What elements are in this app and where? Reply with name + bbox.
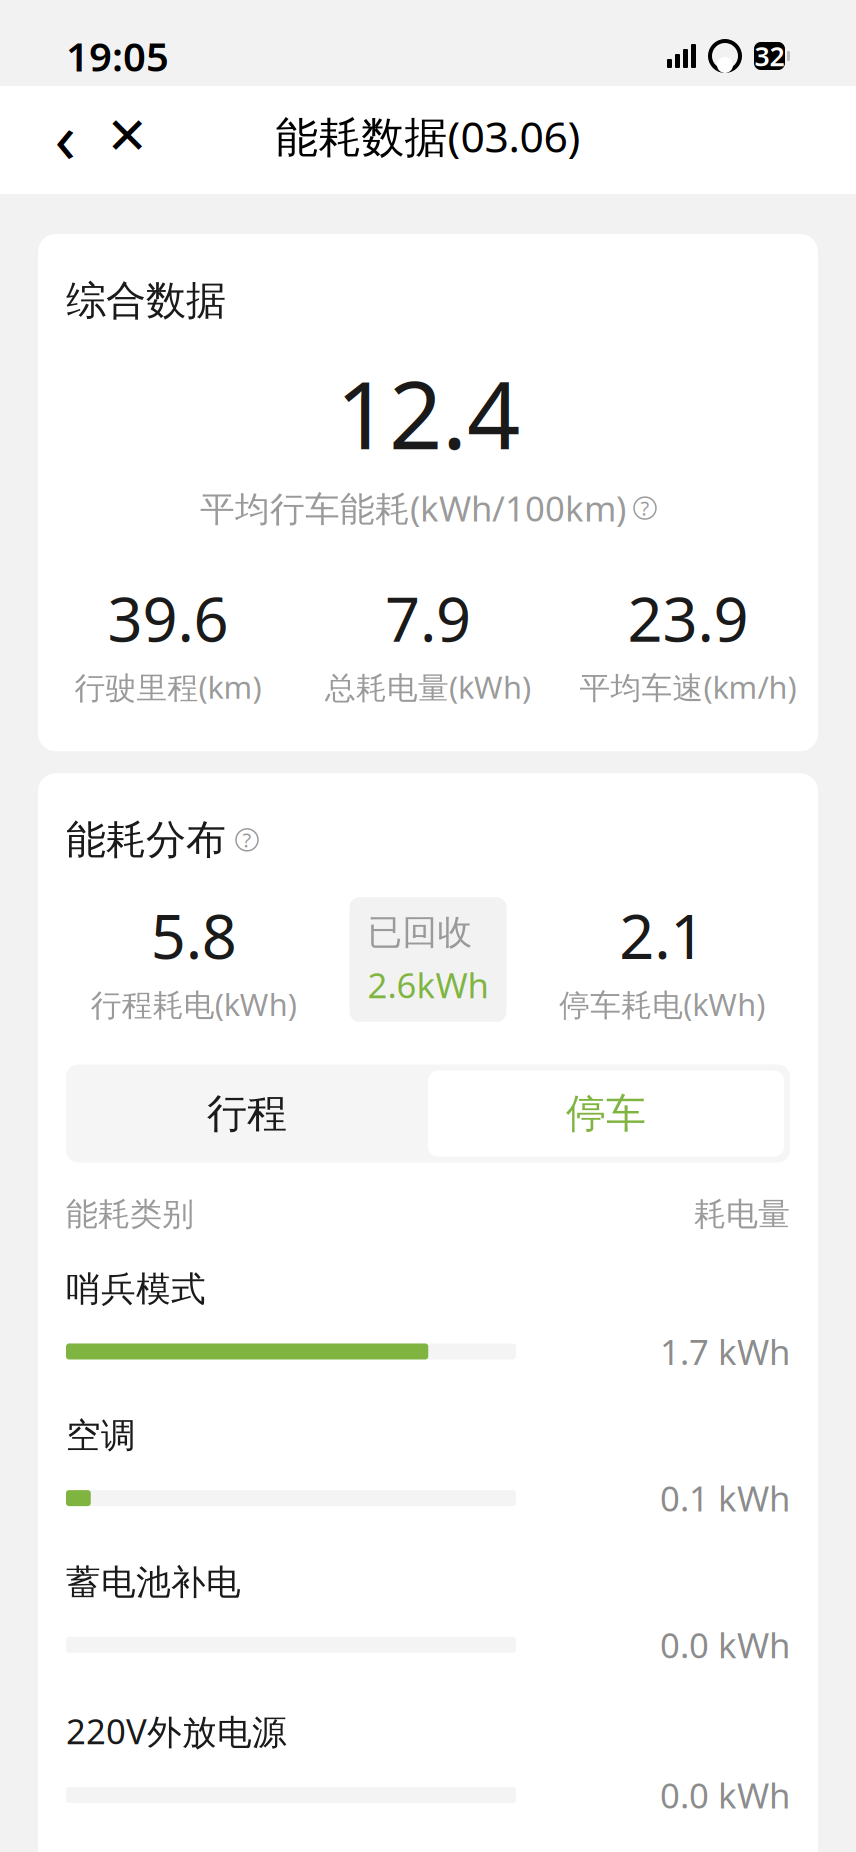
staticText: 0.0 kWh	[660, 1772, 790, 1818]
staticText: 7.9	[385, 577, 471, 658]
staticText: 220V外放电源	[66, 1708, 287, 1754]
staticText: 32	[754, 38, 784, 74]
staticText: 已回收	[367, 911, 472, 954]
staticText: 19:05	[66, 29, 169, 82]
staticText: ‹	[54, 90, 75, 182]
staticText: 23.9	[627, 577, 748, 658]
staticText: 39.6	[107, 577, 228, 658]
staticText: 2.6kWh	[367, 962, 488, 1008]
staticText: 行驶里程(km)	[74, 667, 261, 707]
staticText: 0.1 kWh	[660, 1475, 790, 1521]
staticText: 1.7 kWh	[660, 1328, 790, 1374]
staticText: 能耗数据(03.06)	[275, 108, 580, 164]
staticText: 总耗电量(kWh)	[325, 667, 531, 707]
staticText: 停车耗电(kWh)	[559, 984, 765, 1025]
staticText: 2.1	[619, 894, 705, 976]
button[interactable]: Back	[34, 105, 96, 167]
button[interactable]: Close	[96, 105, 158, 167]
staticText: 0.0 kWh	[660, 1622, 790, 1668]
button[interactable]: 行程	[66, 1071, 428, 1157]
staticText: 哨兵模式	[66, 1268, 206, 1310]
staticText: 能耗类别	[66, 1195, 194, 1234]
staticText: 平均行车能耗(kWh/100km)	[200, 485, 626, 531]
staticText: 空调	[66, 1414, 136, 1457]
staticText: 平均车速(km/h)	[579, 667, 796, 707]
button[interactable]: 停车	[428, 1071, 784, 1157]
staticText: 行程耗电(kWh)	[91, 984, 297, 1025]
staticText: 停车	[566, 1089, 646, 1138]
staticText: 蓄电池补电	[66, 1561, 241, 1604]
staticText: ✕	[106, 107, 148, 165]
staticText: ?	[640, 495, 649, 521]
staticText: 5.8	[151, 894, 237, 976]
staticText: ?	[242, 827, 251, 853]
staticText: 12.4	[336, 351, 520, 475]
staticText: 能耗分布	[66, 815, 226, 864]
staticText: 行程	[207, 1089, 287, 1138]
staticText: 耗电量	[694, 1195, 790, 1234]
staticText: 综合数据	[66, 276, 226, 325]
